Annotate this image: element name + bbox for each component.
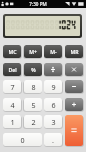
button[interactable]: 7 (3, 80, 21, 93)
button[interactable]: Plus (65, 98, 83, 111)
staticText: Del (8, 66, 17, 73)
staticText: . (52, 135, 54, 145)
button[interactable]: Minus (65, 80, 83, 93)
staticText: MR (70, 48, 79, 55)
staticText: 1 (10, 117, 15, 127)
staticText: 7 (10, 82, 15, 92)
staticText: MC (8, 48, 17, 55)
button[interactable]: 1 (3, 115, 21, 128)
staticText: 4 (10, 100, 15, 110)
button[interactable]: 3 (44, 115, 62, 128)
staticText: M- (50, 48, 57, 55)
button[interactable]: Del (3, 63, 21, 76)
button[interactable]: M- (44, 45, 62, 58)
button[interactable]: Multiply (65, 63, 83, 76)
button[interactable]: 2 (24, 115, 42, 128)
button[interactable]: % (24, 63, 42, 76)
button[interactable]: 6 (44, 98, 62, 111)
button[interactable]: MC (3, 45, 21, 58)
button[interactable]: 4 (3, 98, 21, 111)
button[interactable]: . (44, 133, 62, 146)
button[interactable]: MR (65, 45, 83, 58)
staticText: M+ (29, 48, 37, 55)
staticText: % (31, 66, 36, 73)
button[interactable]: Divide (44, 63, 62, 76)
staticText: 6 (51, 100, 56, 110)
staticText: 7:30 PM (29, 1, 47, 7)
staticText: 8 (31, 82, 36, 92)
staticText: 9 (51, 82, 56, 92)
button[interactable]: Equals (65, 115, 83, 146)
staticText: 3 (51, 117, 56, 127)
button[interactable]: 0 (3, 133, 42, 146)
button[interactable]: 5 (24, 98, 42, 111)
button[interactable]: M+ (24, 45, 42, 58)
staticText: 5 (31, 100, 36, 110)
staticText: 0 (20, 135, 25, 145)
button[interactable]: 8 (24, 80, 42, 93)
staticText: 2 (31, 117, 36, 127)
button[interactable]: 9 (44, 80, 62, 93)
